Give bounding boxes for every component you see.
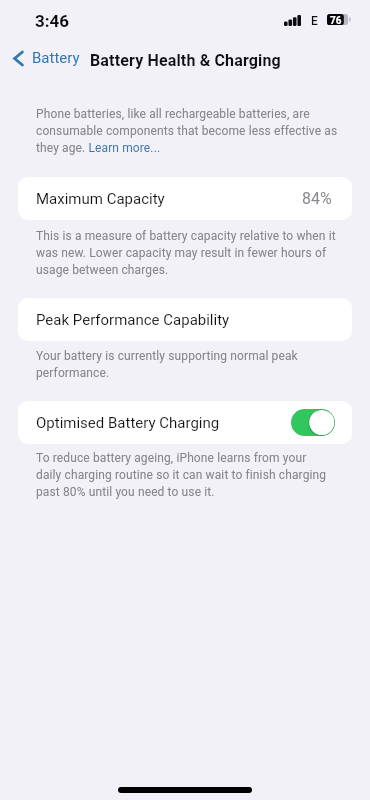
staticText: Phone batteries, like all rechargeable b… (36, 107, 341, 155)
button[interactable]: Maximum Capacity (18, 177, 352, 220)
other: Back (13, 50, 24, 67)
staticText: To reduce battery ageing, iPhone learns … (36, 451, 328, 499)
staticText: Battery (32, 49, 80, 67)
staticText: Your battery is currently supporting nor… (36, 349, 341, 380)
staticText: Peak Performance Capability (36, 311, 230, 329)
staticText: E (311, 14, 318, 28)
button[interactable]: Peak Performance Capability (18, 298, 352, 341)
staticText: Battery Health & Charging (90, 51, 281, 70)
staticText: This is a measure of battery capacity re… (36, 229, 341, 277)
staticText: 84% (302, 189, 332, 208)
staticText: Optimised Battery Charging (36, 414, 220, 432)
button[interactable]: Optimised Battery Charging (18, 401, 352, 444)
button[interactable]: Back (13, 49, 80, 67)
button[interactable]: Learn more (88, 140, 160, 155)
staticText: Maximum Capacity (36, 190, 165, 208)
staticText: 3:46 (35, 11, 70, 31)
staticText: 76 (330, 15, 342, 27)
button[interactable]: Optimised Battery Charging toggle (291, 409, 335, 436)
